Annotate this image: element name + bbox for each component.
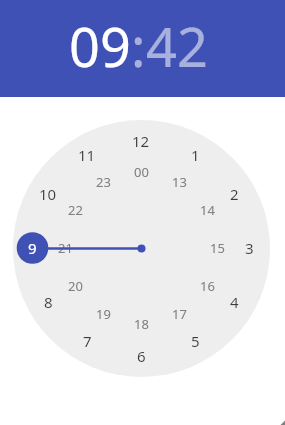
staticText: 18: [134, 315, 149, 333]
staticText: 10: [39, 184, 57, 204]
staticText: 19: [96, 305, 111, 323]
button[interactable]: 7: [67, 330, 107, 352]
button[interactable]: 00: [121, 162, 161, 182]
button[interactable]: 13: [159, 172, 199, 192]
button[interactable]: 17: [159, 304, 199, 324]
staticText: 14: [200, 201, 215, 219]
staticText: 2: [230, 184, 239, 204]
button[interactable]: 3: [229, 237, 269, 259]
staticText: :: [131, 9, 146, 83]
staticText: 12: [132, 131, 150, 151]
staticText: 13: [172, 173, 187, 191]
staticText: 42: [146, 9, 208, 83]
staticText: 09: [69, 9, 131, 83]
button[interactable]: 23: [83, 172, 123, 192]
button[interactable]: 19: [83, 304, 123, 324]
staticText: 8: [44, 292, 53, 312]
button[interactable]: 8: [28, 291, 68, 313]
staticText: 22: [68, 201, 83, 219]
button[interactable]: 4: [214, 291, 254, 313]
staticText: 11: [78, 145, 96, 165]
button[interactable]: 1: [175, 144, 215, 166]
button[interactable]: 10: [28, 183, 68, 205]
button[interactable]: 18: [121, 314, 161, 334]
staticText: 23: [96, 173, 111, 191]
staticText: 20: [68, 277, 83, 295]
button[interactable]: 21: [45, 238, 85, 258]
button[interactable]: 14: [187, 200, 227, 220]
staticText: 1: [191, 145, 200, 165]
button[interactable]: 16: [187, 276, 227, 296]
staticText: 16: [200, 277, 215, 295]
staticText: 3: [245, 238, 254, 258]
button[interactable]: 5: [175, 330, 215, 352]
button[interactable]: 22: [55, 200, 95, 220]
button[interactable]: 42: [146, 9, 208, 83]
button[interactable]: 20: [55, 276, 95, 296]
button[interactable]: 6: [121, 345, 161, 367]
button[interactable]: 2: [214, 183, 254, 205]
staticText: 9: [28, 238, 37, 258]
staticText: 00: [134, 163, 149, 181]
staticText: 21: [58, 239, 73, 257]
button[interactable]: 12: [121, 130, 161, 152]
button[interactable]: 9: [12, 237, 52, 259]
staticText: 4: [230, 292, 239, 312]
staticText: 17: [172, 305, 187, 323]
button[interactable]: 11: [67, 144, 107, 166]
button[interactable]: 09: [69, 9, 131, 83]
staticText: 15: [210, 239, 225, 257]
staticText: 5: [191, 331, 200, 351]
staticText: 7: [83, 331, 92, 351]
button[interactable]: 15: [197, 238, 237, 258]
staticText: 6: [137, 346, 146, 366]
